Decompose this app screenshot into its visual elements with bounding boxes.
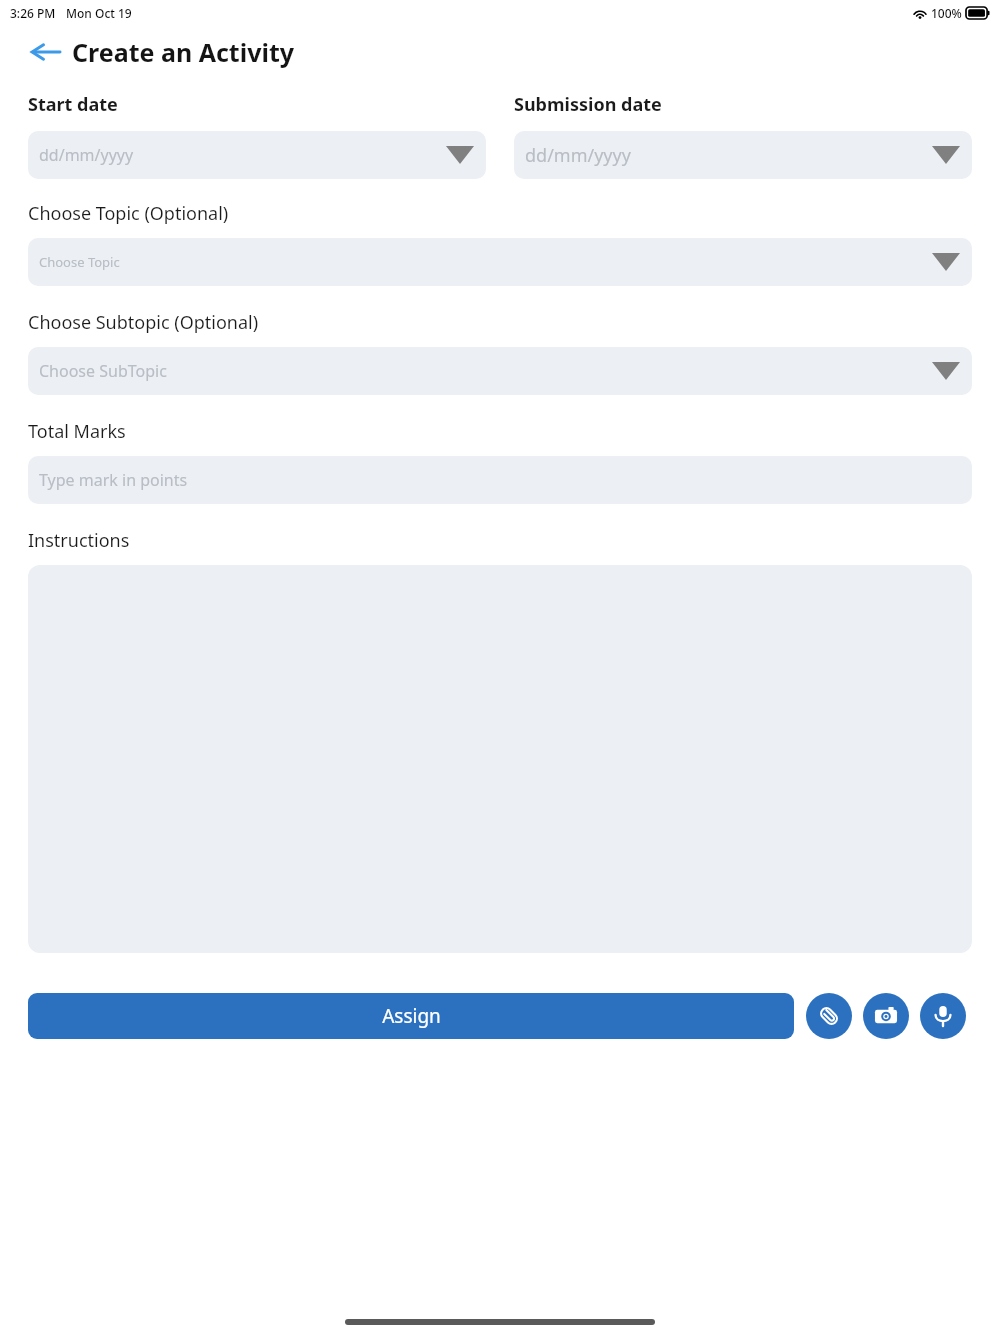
button[interactable]: Attach file (806, 993, 852, 1039)
staticText: Choose Topic (Optional) (28, 201, 229, 226)
staticText: 3:26 PM (10, 5, 56, 21)
staticText: 100% (931, 5, 962, 21)
staticText: Instructions (28, 528, 130, 553)
button[interactable]: Start date (28, 131, 486, 179)
staticText: Total Marks (28, 419, 126, 444)
staticText: Choose Topic (39, 253, 120, 271)
staticText: Assign (382, 1003, 441, 1029)
staticText: Type mark in points (39, 469, 188, 491)
button[interactable]: Choose SubTopic (28, 347, 972, 395)
button[interactable]: Total Marks (28, 456, 972, 504)
button[interactable]: Choose Topic (28, 238, 972, 286)
staticText: Choose Subtopic (Optional) (28, 310, 259, 335)
button[interactable]: Submission date (514, 131, 972, 179)
button[interactable]: Assign (28, 993, 794, 1039)
staticText: Create an Activity (72, 35, 295, 69)
staticText: Start date (28, 92, 118, 117)
button[interactable]: Back (26, 35, 64, 69)
button[interactable]: Take photo (863, 993, 909, 1039)
staticText: Mon Oct 19 (66, 5, 132, 21)
button[interactable]: Record audio (920, 993, 966, 1039)
staticText: dd/mm/yyyy (525, 143, 631, 168)
staticText: Submission date (514, 92, 662, 117)
staticText: dd/mm/yyyy (39, 144, 134, 166)
staticText: Choose SubTopic (39, 360, 167, 382)
